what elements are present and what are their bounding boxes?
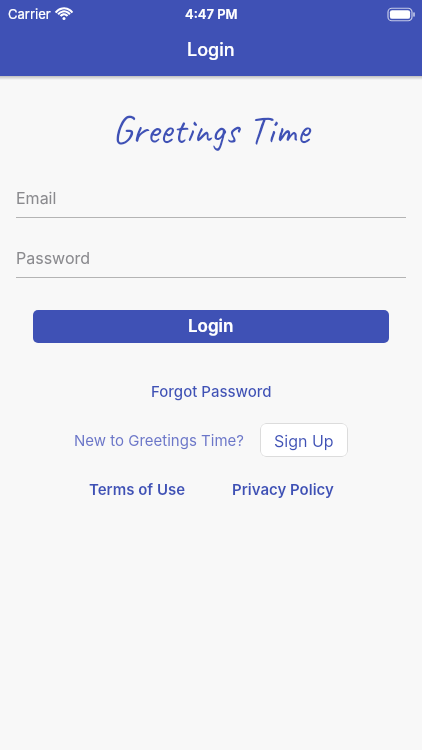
button[interactable]: Email xyxy=(16,182,422,212)
staticText: Privacy Policy xyxy=(232,480,334,498)
button[interactable]: Privacy Policy xyxy=(232,480,334,498)
staticText: Sign Up xyxy=(274,431,334,450)
button[interactable]: Terms of Use xyxy=(89,480,186,498)
staticText: Email xyxy=(16,188,57,207)
button[interactable]: Login xyxy=(33,310,389,343)
button[interactable]: Password xyxy=(16,242,422,272)
staticText: Login xyxy=(188,316,234,337)
staticText: Login xyxy=(187,39,235,61)
button[interactable]: Forgot Password xyxy=(151,382,272,400)
staticText: Carrier xyxy=(8,6,51,22)
staticText: Terms of Use xyxy=(89,480,186,498)
staticText: New to Greetings Time? xyxy=(74,431,244,449)
staticText: Forgot Password xyxy=(151,382,272,400)
staticText: Greetings Time xyxy=(112,105,310,155)
staticText: Password xyxy=(16,248,91,267)
staticText: 4:47 PM xyxy=(185,6,238,22)
button[interactable]: Sign Up xyxy=(260,423,348,457)
